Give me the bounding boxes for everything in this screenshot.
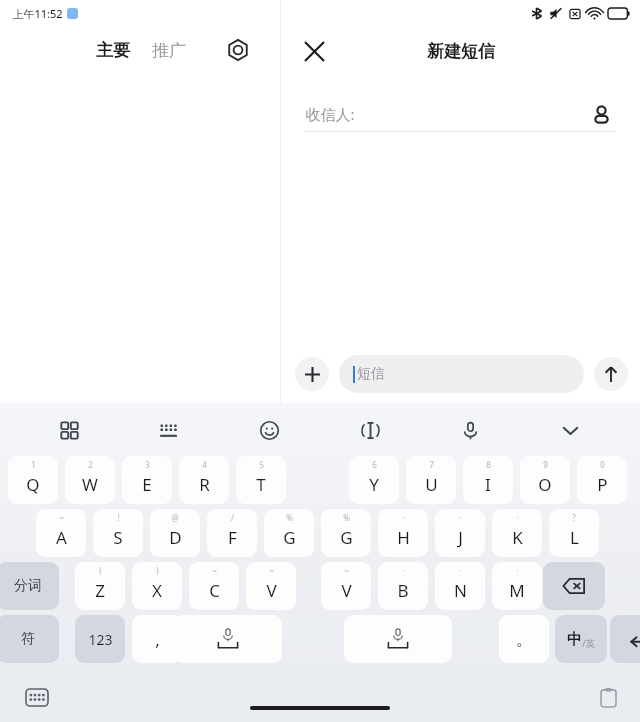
staticText: 3 xyxy=(145,459,150,470)
staticText: ! xyxy=(117,512,120,523)
staticText: 6 xyxy=(372,459,377,470)
button[interactable]: 。 xyxy=(499,615,549,663)
button[interactable]: 6 xyxy=(349,456,399,504)
button[interactable]: 短信 xyxy=(339,355,584,393)
button[interactable]: Enter xyxy=(610,615,640,663)
button[interactable]: Text edit xyxy=(350,415,390,445)
button[interactable]: ( xyxy=(75,562,125,610)
button[interactable]: · xyxy=(492,509,542,557)
button[interactable]: 8 xyxy=(463,456,513,504)
staticText: / xyxy=(231,512,234,523)
button[interactable]: 3 xyxy=(122,456,172,504)
button[interactable]: Apps xyxy=(49,415,89,445)
button[interactable]: 分词 xyxy=(0,562,59,610)
staticText: 9 xyxy=(543,459,548,470)
button[interactable]: 123 xyxy=(75,615,125,663)
button[interactable]: Hide keyboard xyxy=(550,415,590,445)
button[interactable]: 9 xyxy=(520,456,570,504)
button[interactable]: 5 xyxy=(236,456,286,504)
staticText: % xyxy=(343,512,350,523)
staticText: · xyxy=(402,512,405,523)
staticText: C xyxy=(209,579,220,602)
button[interactable]: 中 xyxy=(555,615,607,663)
staticText: ~ xyxy=(59,512,64,523)
button[interactable]: 4 xyxy=(179,456,229,504)
staticText: 分词 xyxy=(14,577,42,595)
button[interactable]: Space xyxy=(344,615,452,663)
staticText: · xyxy=(516,512,519,523)
staticText: I xyxy=(485,473,491,496)
button[interactable]: ~ xyxy=(36,509,86,557)
button[interactable]: Voice input xyxy=(450,415,490,445)
button[interactable]: 主要 xyxy=(92,34,134,67)
button[interactable]: ~ xyxy=(321,562,371,610)
button[interactable]: ! xyxy=(93,509,143,557)
staticText: ( xyxy=(99,565,102,576)
staticText: @ xyxy=(171,512,179,523)
staticText: ) xyxy=(156,565,159,576)
button[interactable]: ~ xyxy=(189,562,239,610)
staticText: 5 xyxy=(259,459,264,470)
staticText: 收信人: xyxy=(305,104,355,124)
staticText: N xyxy=(454,579,467,602)
button[interactable]: · xyxy=(492,562,542,610)
button[interactable]: Close xyxy=(297,34,331,68)
button[interactable]: Emoji xyxy=(249,415,289,445)
button[interactable]: , xyxy=(132,615,182,663)
button[interactable]: Pick contact xyxy=(586,99,616,129)
button[interactable]: ) xyxy=(132,562,182,610)
staticText: X xyxy=(152,579,162,602)
staticText: ? xyxy=(572,512,576,523)
staticText: E xyxy=(142,473,152,496)
staticText: F xyxy=(228,526,237,549)
staticText: J xyxy=(458,526,463,549)
staticText: T xyxy=(256,473,266,496)
button[interactable]: 推广 xyxy=(148,34,190,67)
staticText: ~ xyxy=(269,565,274,576)
button[interactable]: % xyxy=(321,509,371,557)
staticText: 8 xyxy=(486,459,491,470)
staticText: 4 xyxy=(202,459,207,470)
button[interactable]: / xyxy=(207,509,257,557)
staticText: · xyxy=(459,565,462,576)
button[interactable]: @ xyxy=(150,509,200,557)
staticText: R xyxy=(199,473,210,496)
staticText: ~ xyxy=(344,565,349,576)
button[interactable]: · xyxy=(378,562,428,610)
button[interactable]: Switch keyboard xyxy=(22,685,52,709)
button[interactable]: Add attachment xyxy=(295,357,329,391)
button[interactable]: · xyxy=(378,509,428,557)
button[interactable]: · xyxy=(435,562,485,610)
button[interactable]: 7 xyxy=(406,456,456,504)
button[interactable]: % xyxy=(264,509,314,557)
button[interactable]: Send xyxy=(594,357,628,391)
button[interactable]: ? xyxy=(549,509,599,557)
button[interactable]: 符 xyxy=(0,615,59,663)
staticText: 新建短信 xyxy=(427,41,495,62)
staticText: V xyxy=(266,579,277,602)
staticText: 1 xyxy=(31,459,36,470)
staticText: O xyxy=(538,473,552,496)
button[interactable]: 1 xyxy=(8,456,58,504)
staticText: Y xyxy=(369,473,379,496)
staticText: V xyxy=(341,579,352,602)
button[interactable]: 2 xyxy=(65,456,115,504)
staticText: S xyxy=(113,526,123,549)
button[interactable]: · xyxy=(435,509,485,557)
button[interactable]: Backspace xyxy=(543,562,605,610)
button[interactable]: 0 xyxy=(577,456,627,504)
staticText: M xyxy=(509,579,525,602)
button[interactable]: Clipboard xyxy=(594,683,622,711)
staticText: 短信 xyxy=(357,365,385,383)
button[interactable]: ~ xyxy=(246,562,296,610)
staticText: Z xyxy=(95,579,105,602)
staticText: 符 xyxy=(21,630,35,648)
staticText: D xyxy=(169,526,182,549)
staticText: L xyxy=(570,526,579,549)
button[interactable]: Space xyxy=(174,615,282,663)
staticText: H xyxy=(397,526,410,549)
button[interactable]: Keyboard layout xyxy=(148,415,188,445)
staticText: /英 xyxy=(582,637,595,649)
staticText: 7 xyxy=(429,459,434,470)
button[interactable]: Settings xyxy=(218,30,258,70)
